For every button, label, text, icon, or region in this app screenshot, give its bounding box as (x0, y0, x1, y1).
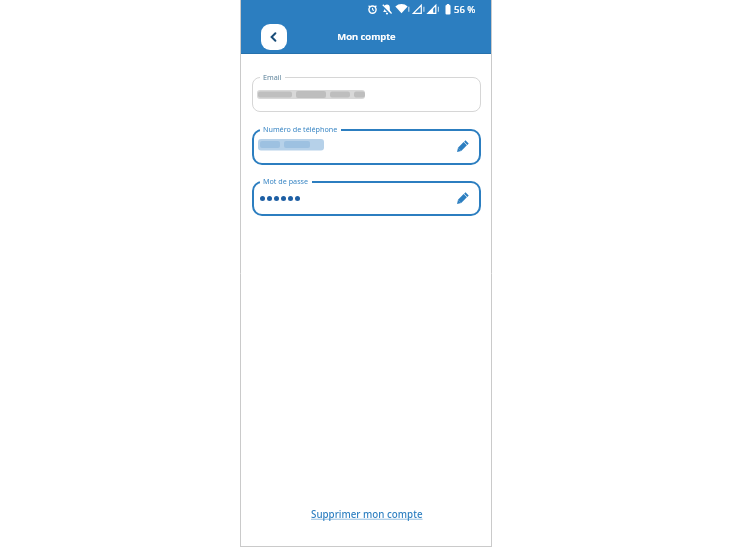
staticText: Numéro de téléphone (263, 124, 338, 134)
button[interactable] (261, 24, 287, 50)
button[interactable]: Numéro de téléphone (252, 129, 481, 165)
staticText: Mon compte (337, 30, 396, 43)
staticText: Email (263, 72, 282, 82)
staticText: Mot de passe (263, 176, 309, 186)
button[interactable]: Mot de passe (252, 181, 481, 216)
button[interactable]: Supprimer mon compte (307, 504, 427, 525)
staticText: 56 % (454, 3, 476, 16)
